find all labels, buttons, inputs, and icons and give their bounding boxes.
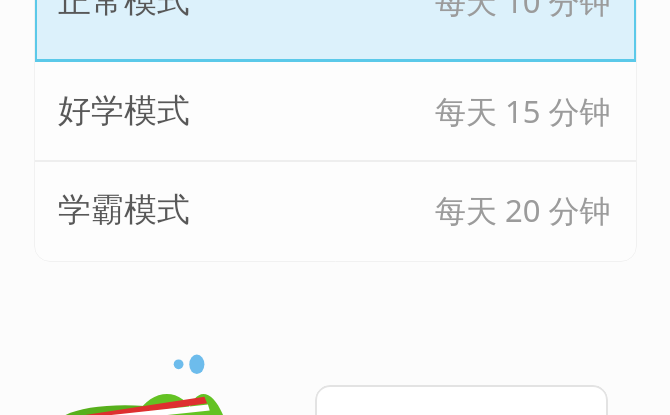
button[interactable]: Action button bbox=[315, 385, 608, 415]
staticText: 每天 20 分钟 bbox=[435, 189, 611, 231]
button[interactable]: 好学模式 bbox=[34, 62, 637, 160]
staticText: 每天 10 分钟 bbox=[435, 0, 611, 22]
other: Decorative illustration bbox=[62, 350, 240, 415]
staticText: 学霸模式 bbox=[58, 189, 190, 231]
staticText: 每天 15 分钟 bbox=[435, 90, 611, 132]
button[interactable]: 正常模式 bbox=[34, 0, 637, 62]
staticText: 好学模式 bbox=[58, 90, 190, 132]
staticText: 正常模式 bbox=[58, 0, 190, 22]
button[interactable]: 学霸模式 bbox=[34, 161, 637, 259]
